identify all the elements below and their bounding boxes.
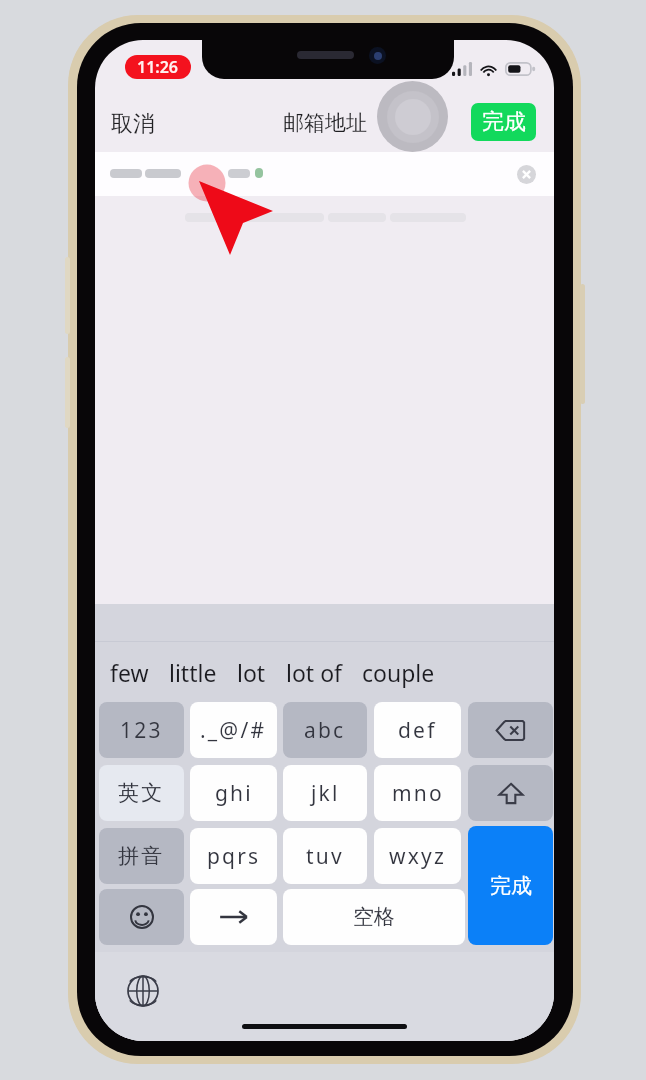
staticText: jkl xyxy=(311,779,340,808)
button[interactable]: def xyxy=(374,702,461,758)
staticText: 空格 xyxy=(353,904,395,930)
button[interactable]: Clear text xyxy=(515,163,537,185)
button[interactable]: wxyz xyxy=(374,828,461,884)
button[interactable]: Shift xyxy=(468,765,553,821)
staticText: 取消 xyxy=(111,110,155,138)
staticText: 123 xyxy=(120,716,163,745)
button[interactable]: Switch keyboard xyxy=(120,968,166,1014)
staticText: 11:26 xyxy=(137,56,179,78)
button[interactable]: tuv xyxy=(283,828,367,884)
button[interactable]: 英文 xyxy=(99,765,184,821)
staticText: 邮箱地址 xyxy=(283,110,367,136)
button[interactable]: Backspace xyxy=(468,702,553,758)
button[interactable]: mno xyxy=(374,765,461,821)
button[interactable]: 123 xyxy=(99,702,184,758)
button[interactable]: couple xyxy=(352,649,445,696)
button[interactable]: 空格 xyxy=(283,889,465,945)
staticText: lot of xyxy=(286,657,342,688)
button[interactable]: 拼音 xyxy=(99,828,184,884)
button[interactable]: ghi xyxy=(190,765,277,821)
staticText: mno xyxy=(392,779,444,808)
staticText: couple xyxy=(362,657,435,688)
staticText: lot xyxy=(237,657,266,688)
button[interactable]: 完成 xyxy=(468,826,553,945)
staticText: pqrs xyxy=(207,842,261,871)
staticText: few xyxy=(110,657,149,688)
staticText: 英文 xyxy=(118,780,165,806)
button[interactable]: pqrs xyxy=(190,828,277,884)
staticText: 拼音 xyxy=(118,843,165,869)
button[interactable]: few xyxy=(100,649,159,696)
button[interactable]: abc xyxy=(283,702,367,758)
staticText: wxyz xyxy=(389,842,446,871)
staticText: def xyxy=(398,716,437,745)
button[interactable]: ._@/# xyxy=(190,702,277,758)
button[interactable]: lot of xyxy=(276,649,352,696)
button[interactable]: 完成 xyxy=(471,103,536,141)
button[interactable]: Emoji xyxy=(99,889,184,945)
button[interactable]: 取消 xyxy=(105,102,161,146)
staticText: abc xyxy=(304,716,346,745)
button[interactable]: lot xyxy=(227,649,276,696)
button[interactable]: Next xyxy=(190,889,277,945)
staticText: tuv xyxy=(306,842,344,871)
button[interactable]: little xyxy=(159,649,227,696)
staticText: 完成 xyxy=(482,108,526,136)
staticText: ghi xyxy=(215,779,253,808)
staticText: little xyxy=(169,657,217,688)
staticText: ._@/# xyxy=(200,716,267,745)
staticText: 完成 xyxy=(490,873,532,899)
button[interactable]: jkl xyxy=(283,765,367,821)
